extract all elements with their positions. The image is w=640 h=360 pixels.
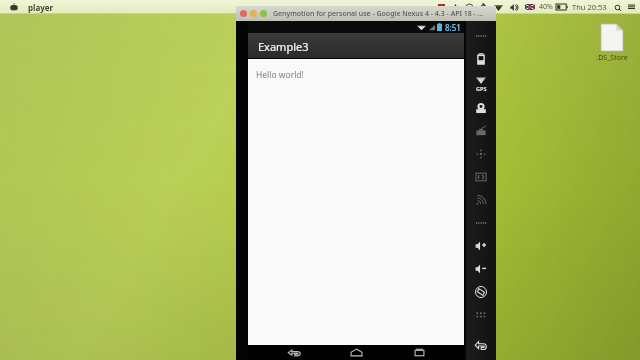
button[interactable]: Example3 <box>248 33 464 59</box>
button[interactable]: Volume up <box>467 234 495 257</box>
button[interactable]: Screen capture <box>467 119 495 142</box>
button[interactable]: Close <box>240 10 247 17</box>
button[interactable]: Identifiers <box>467 165 495 188</box>
button[interactable]: Back <box>467 333 495 356</box>
button[interactable]: Apple menu <box>8 1 20 13</box>
button[interactable]: Volume <box>508 1 520 13</box>
staticText: Genymotion for personal use - Google Nex… <box>273 9 484 19</box>
staticText: Hello world! <box>256 69 304 81</box>
button[interactable]: GPS <box>467 70 495 96</box>
button[interactable]: Rotate screen <box>467 280 495 303</box>
button[interactable]: Time Machine <box>464 2 474 12</box>
button[interactable]: Home <box>339 345 373 360</box>
button[interactable]: Signal strength <box>467 24 495 47</box>
button[interactable]: Back <box>277 345 311 360</box>
button[interactable]: .DS_Store <box>592 24 632 63</box>
button[interactable]: Volume down <box>467 257 495 280</box>
button[interactable]: Zoom <box>260 10 267 17</box>
button[interactable]: Keyboard <box>467 303 495 326</box>
button[interactable]: Wi-Fi <box>492 1 504 13</box>
staticText: 8:51 <box>445 22 461 33</box>
button[interactable]: Recent apps <box>402 345 436 360</box>
button[interactable]: Minimize <box>250 10 257 17</box>
button[interactable]: Navigation pad <box>467 142 495 165</box>
button[interactable]: Notification Center <box>626 2 636 12</box>
button[interactable]: player <box>28 2 54 13</box>
button[interactable]: 40% <box>539 2 553 12</box>
button[interactable]: Camera <box>467 96 495 119</box>
button[interactable]: Battery level <box>467 211 495 234</box>
button[interactable]: Battery <box>467 47 495 70</box>
button[interactable]: Thu 20:53 <box>572 2 607 12</box>
staticText: Example3 <box>258 39 309 54</box>
staticText: GPS <box>476 85 487 92</box>
button[interactable]: Bluetooth <box>478 2 488 12</box>
button[interactable]: Menu item <box>436 2 446 12</box>
button[interactable]: Close <box>236 6 496 21</box>
button[interactable]: Network <box>467 188 495 211</box>
staticText: .DS_Store <box>596 53 628 63</box>
button[interactable]: Input source <box>524 1 536 13</box>
button[interactable]: Battery <box>555 2 569 12</box>
button[interactable]: Spotlight search <box>612 2 622 12</box>
button[interactable]: Dropbox <box>450 2 460 12</box>
